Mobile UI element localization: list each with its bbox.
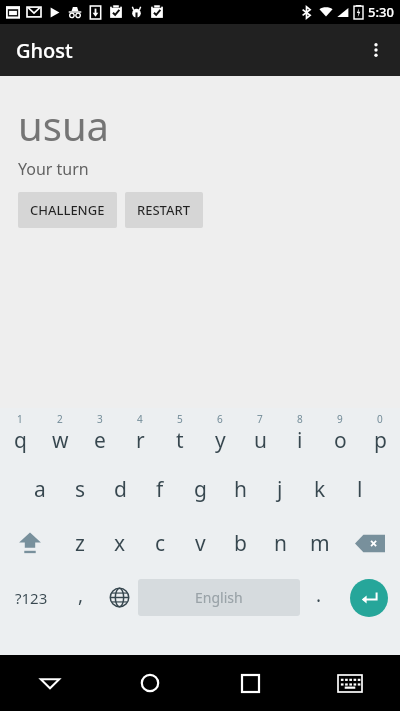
staticText: 6 xyxy=(217,412,223,426)
button[interactable]: d xyxy=(100,462,140,516)
staticText: v xyxy=(195,529,206,558)
button[interactable]: . xyxy=(300,570,338,625)
button[interactable]: English xyxy=(138,579,300,616)
staticText: 2 xyxy=(57,412,63,426)
button[interactable]: Backspace xyxy=(340,516,400,570)
staticText: j xyxy=(277,475,283,504)
staticText: English xyxy=(195,588,243,607)
staticText: RESTART xyxy=(137,201,191,219)
button[interactable]: Back xyxy=(0,655,100,711)
staticText: a xyxy=(34,475,46,504)
staticText: k xyxy=(314,475,326,504)
staticText: l xyxy=(357,475,363,504)
staticText: 9 xyxy=(337,412,343,426)
staticText: 8 xyxy=(297,412,303,426)
staticText: c xyxy=(155,529,166,558)
button[interactable]: k xyxy=(300,462,340,516)
staticText: , xyxy=(78,582,84,608)
staticText: n xyxy=(274,529,287,558)
button[interactable]: n xyxy=(260,516,300,570)
staticText: r xyxy=(136,426,145,455)
button[interactable]: v xyxy=(180,516,220,570)
staticText: 3 xyxy=(97,412,103,426)
button[interactable]: , xyxy=(62,570,100,625)
staticText: t xyxy=(176,426,184,455)
button[interactable]: 0 xyxy=(360,408,400,462)
staticText: 4 xyxy=(137,412,143,426)
staticText: Your turn xyxy=(18,158,89,180)
button[interactable]: 8 xyxy=(280,408,320,462)
button[interactable]: x xyxy=(100,516,140,570)
button[interactable]: 6 xyxy=(200,408,240,462)
button[interactable]: 2 xyxy=(40,408,80,462)
button[interactable]: CHALLENGE xyxy=(18,192,117,228)
staticText: CHALLENGE xyxy=(30,201,105,219)
button[interactable]: 7 xyxy=(240,408,280,462)
staticText: b xyxy=(234,529,247,558)
staticText: e xyxy=(94,426,106,455)
button[interactable]: More options xyxy=(352,26,400,74)
button[interactable]: Change language xyxy=(100,570,138,625)
staticText: p xyxy=(374,426,387,455)
button[interactable]: Shift xyxy=(0,516,60,570)
staticText: x xyxy=(114,529,126,558)
button[interactable]: a xyxy=(20,462,60,516)
staticText: f xyxy=(156,475,164,504)
staticText: g xyxy=(194,475,207,504)
button[interactable]: 1 xyxy=(0,408,40,462)
button[interactable]: z xyxy=(60,516,100,570)
staticText: 7 xyxy=(257,412,263,426)
staticText: ?123 xyxy=(15,588,48,608)
staticText: o xyxy=(334,426,347,455)
staticText: . xyxy=(316,582,322,608)
button[interactable]: Home xyxy=(100,655,200,711)
button[interactable]: Recent apps xyxy=(200,655,300,711)
button[interactable]: f xyxy=(140,462,180,516)
staticText: usua xyxy=(18,98,110,152)
button[interactable]: g xyxy=(180,462,220,516)
staticText: w xyxy=(52,426,69,455)
button[interactable]: 9 xyxy=(320,408,360,462)
staticText: 5:30 xyxy=(368,3,394,21)
button[interactable]: RESTART xyxy=(125,192,203,228)
staticText: z xyxy=(75,529,85,558)
staticText: 1 xyxy=(17,412,23,426)
button[interactable]: m xyxy=(300,516,340,570)
button[interactable]: 4 xyxy=(120,408,160,462)
staticText: s xyxy=(75,475,86,504)
button[interactable]: Enter xyxy=(338,570,400,625)
staticText: u xyxy=(254,426,267,455)
button[interactable]: h xyxy=(220,462,260,516)
button[interactable]: j xyxy=(260,462,300,516)
staticText: h xyxy=(234,475,247,504)
button[interactable]: l xyxy=(340,462,380,516)
staticText: 0 xyxy=(377,412,383,426)
staticText: d xyxy=(114,475,127,504)
button[interactable]: s xyxy=(60,462,100,516)
button[interactable]: 3 xyxy=(80,408,120,462)
button[interactable]: Switch keyboard xyxy=(300,655,400,711)
button[interactable]: ?123 xyxy=(0,570,62,625)
staticText: i xyxy=(297,426,303,455)
button[interactable]: b xyxy=(220,516,260,570)
button[interactable]: 5 xyxy=(160,408,200,462)
staticText: m xyxy=(310,529,330,558)
staticText: y xyxy=(215,426,226,455)
staticText: Ghost xyxy=(16,37,73,64)
button[interactable]: c xyxy=(140,516,180,570)
staticText: 5 xyxy=(177,412,183,426)
staticText: q xyxy=(14,426,27,455)
